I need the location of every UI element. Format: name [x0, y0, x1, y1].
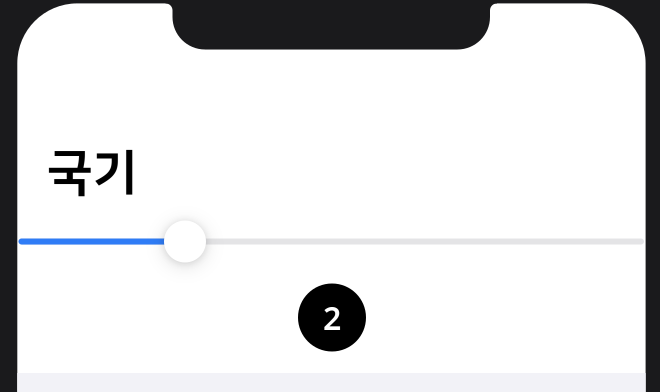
button[interactable]: Progress: [18, 220, 644, 262]
staticText: 국기: [47, 134, 137, 210]
staticText: 2: [323, 296, 341, 339]
button[interactable]: 2: [298, 283, 366, 351]
